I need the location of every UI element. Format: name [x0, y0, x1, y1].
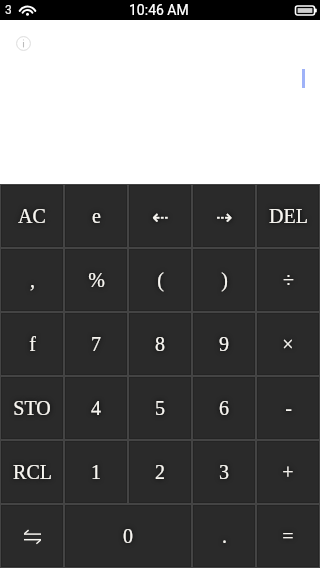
- button[interactable]: (: [129, 249, 191, 311]
- button[interactable]: 5: [129, 377, 191, 439]
- staticText: 10:46 AM: [129, 2, 189, 18]
- button[interactable]: DEL: [257, 185, 319, 247]
- button[interactable]: 1: [65, 441, 127, 503]
- staticText: ⇠: [152, 205, 169, 228]
- staticText: ): [221, 269, 228, 291]
- staticText: 2: [155, 461, 165, 483]
- button[interactable]: 8: [129, 313, 191, 375]
- button[interactable]: e: [65, 185, 127, 247]
- staticText: ×: [282, 333, 294, 355]
- button[interactable]: %: [65, 249, 127, 311]
- staticText: RCL: [13, 461, 52, 483]
- staticText: .: [222, 525, 227, 547]
- button[interactable]: .: [193, 505, 255, 567]
- staticText: =: [282, 525, 294, 547]
- staticText: %: [88, 269, 105, 291]
- staticText: e: [92, 205, 101, 227]
- button[interactable]: +: [257, 441, 319, 503]
- button[interactable]: Info: [16, 36, 31, 51]
- button[interactable]: f: [1, 313, 63, 375]
- button[interactable]: 7: [65, 313, 127, 375]
- button[interactable]: AC: [1, 185, 63, 247]
- button[interactable]: ⇢: [193, 185, 255, 247]
- button[interactable]: 0: [65, 505, 191, 567]
- button[interactable]: 2: [129, 441, 191, 503]
- staticText: 4: [91, 397, 101, 419]
- button[interactable]: ÷: [257, 249, 319, 311]
- button[interactable]: ,: [1, 249, 63, 311]
- staticText: 3: [5, 3, 12, 17]
- staticText: ⇢: [216, 205, 233, 228]
- staticText: DEL: [269, 205, 308, 227]
- button[interactable]: ⇠: [129, 185, 191, 247]
- staticText: 9: [219, 333, 229, 355]
- button[interactable]: ×: [257, 313, 319, 375]
- button[interactable]: 6: [193, 377, 255, 439]
- staticText: (: [157, 269, 164, 291]
- button[interactable]: STO: [1, 377, 63, 439]
- button[interactable]: 3: [193, 441, 255, 503]
- staticText: +: [282, 461, 294, 483]
- staticText: 6: [219, 397, 229, 419]
- button[interactable]: =: [257, 505, 319, 567]
- button[interactable]: ): [193, 249, 255, 311]
- staticText: AC: [18, 205, 46, 227]
- staticText: -: [285, 397, 292, 419]
- staticText: 8: [155, 333, 165, 355]
- staticText: 3: [219, 461, 229, 483]
- staticText: STO: [13, 397, 51, 419]
- button[interactable]: 4: [65, 377, 127, 439]
- button[interactable]: -: [257, 377, 319, 439]
- staticText: 1: [91, 461, 101, 483]
- staticText: ,: [30, 269, 35, 291]
- button[interactable]: RCL: [1, 441, 63, 503]
- staticText: f: [29, 333, 36, 355]
- staticText: 5: [155, 397, 165, 419]
- staticText: ÷: [283, 269, 294, 291]
- button[interactable]: Swap: [1, 505, 63, 567]
- staticText: 0: [123, 525, 133, 547]
- button[interactable]: 9: [193, 313, 255, 375]
- staticText: 7: [91, 333, 101, 355]
